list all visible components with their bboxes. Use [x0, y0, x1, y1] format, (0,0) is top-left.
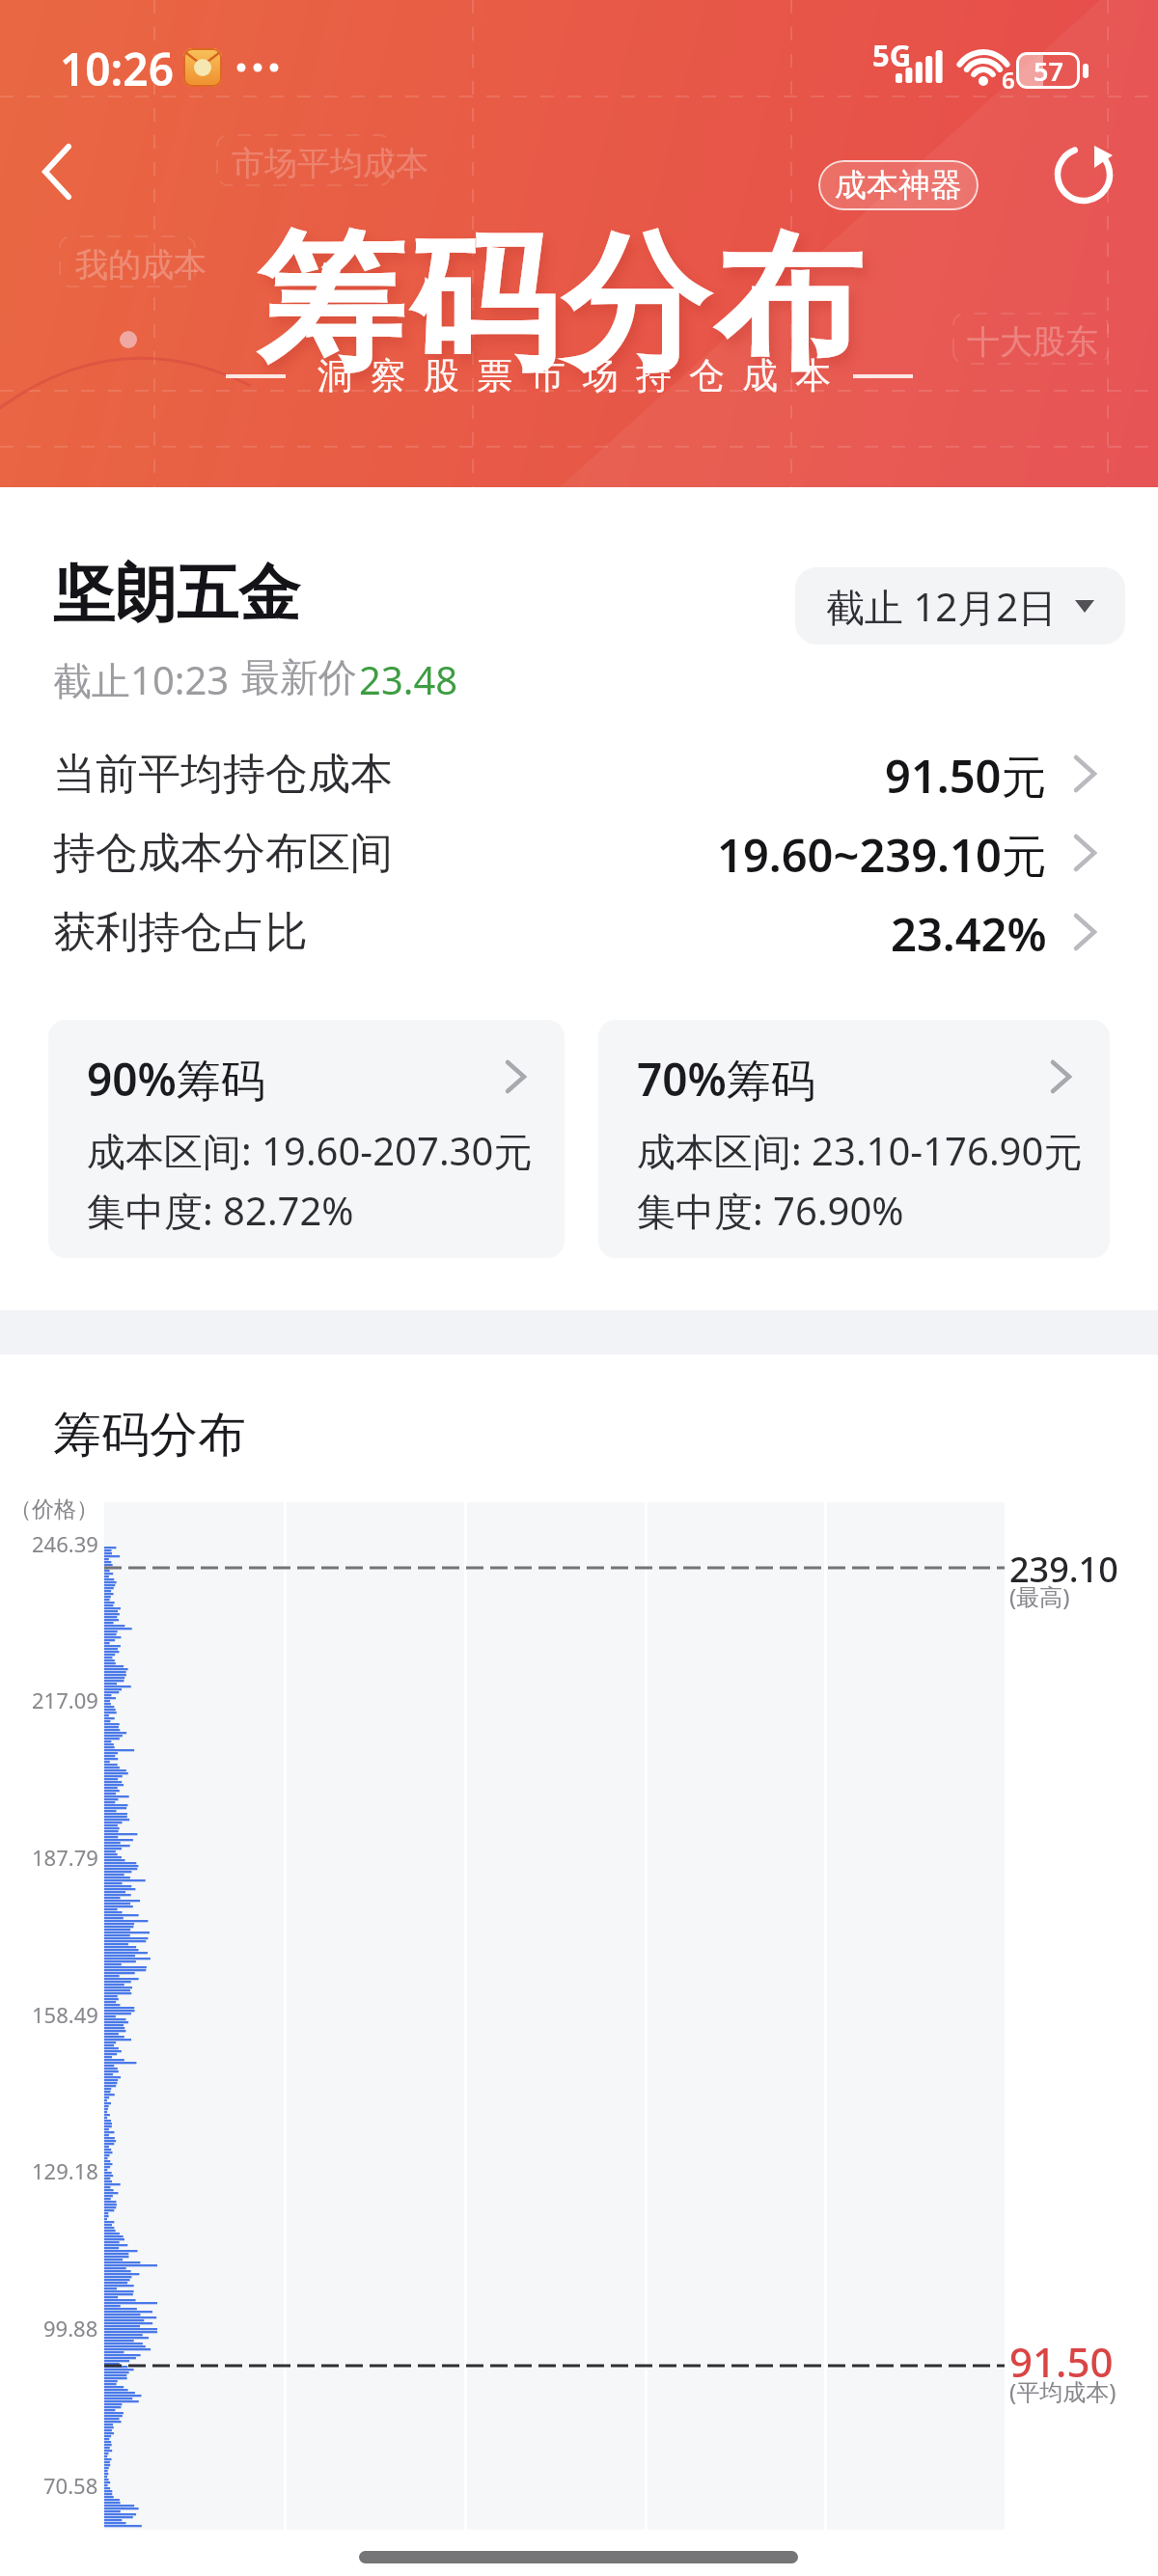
staticText: 129.18 [32, 2156, 98, 2185]
button[interactable]: 70%筹码 [598, 1020, 1110, 1258]
staticText: 十大股东 [967, 321, 1098, 363]
staticText: 最新价 [241, 653, 357, 701]
staticText: 57 [1034, 53, 1063, 89]
staticText: 239.10 [1009, 1546, 1118, 1593]
staticText: 70%筹码 [637, 1049, 815, 1110]
staticText: 码 [409, 212, 557, 398]
staticText: 5G [872, 35, 912, 75]
staticText: (最高) [1009, 1580, 1070, 1612]
staticText: 成本神器 [835, 165, 962, 206]
staticText: (平均成本) [1009, 2375, 1117, 2407]
staticText: 持仓成本分布区间 [53, 827, 393, 880]
staticText: 我的成本 [75, 244, 207, 286]
staticText: 集中度: 76.90% [637, 1184, 904, 1237]
staticText: 246.39 [32, 1529, 98, 1558]
staticText: 布 [714, 212, 862, 398]
staticText: 91.50元 [885, 745, 1047, 807]
button[interactable]: 获利持仓占比 [0, 898, 1158, 966]
staticText: 分 [562, 212, 709, 398]
staticText: 洞察股票市场持仓成本 [309, 353, 840, 398]
staticText: 当前平均持仓成本 [53, 748, 393, 801]
button[interactable]: 持仓成本分布区间 [0, 819, 1158, 887]
button[interactable] [1055, 146, 1113, 204]
staticText: 获利持仓占比 [53, 906, 308, 959]
button[interactable]: 成本神器 [818, 160, 979, 210]
staticText: 10:26 [60, 39, 174, 99]
button[interactable]: 截止 12月2日 [795, 567, 1125, 644]
button[interactable]: 90%筹码 [48, 1020, 565, 1258]
staticText: 23.48 [359, 653, 458, 705]
staticText: 集中度: 82.72% [87, 1184, 354, 1237]
staticText: 成本区间: 19.60-207.30元 [87, 1124, 533, 1177]
staticText: 筹码分布 [53, 1405, 246, 1466]
staticText: 70.58 [43, 2471, 98, 2500]
staticText: 截止10:23 [53, 653, 230, 706]
staticText: 23.42% [891, 903, 1047, 965]
button[interactable] [39, 143, 77, 201]
staticText: 市场平均成本 [232, 143, 428, 184]
staticText: 坚朗五金 [53, 555, 300, 633]
staticText: 91.50 [1009, 2334, 1114, 2389]
staticText: 19.60~239.10元 [717, 824, 1047, 886]
staticText: 99.88 [43, 2314, 98, 2343]
staticText: 截止 12月2日 [826, 580, 1058, 633]
staticText: 217.09 [32, 1685, 98, 1714]
staticText: 187.79 [32, 1843, 98, 1872]
staticText: 90%筹码 [87, 1049, 265, 1110]
button[interactable]: 当前平均持仓成本 [0, 740, 1158, 808]
staticText: （价格） [10, 1495, 98, 1523]
staticText: 6 [1002, 64, 1015, 96]
staticText: 成本区间: 23.10-176.90元 [637, 1124, 1083, 1177]
staticText: 158.49 [32, 2000, 98, 2029]
staticText: 筹 [257, 212, 404, 398]
